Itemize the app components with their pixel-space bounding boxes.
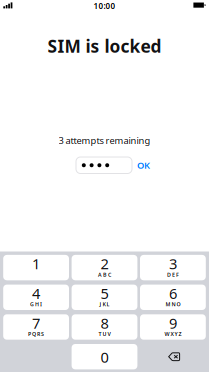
staticText: D E F xyxy=(167,271,179,278)
staticText: 3 xyxy=(169,254,177,273)
button[interactable]: 8 xyxy=(72,314,137,340)
button[interactable]: 3 xyxy=(140,255,206,280)
button[interactable]: 6 xyxy=(140,285,206,310)
staticText: M N O xyxy=(165,301,180,308)
staticText: 6 xyxy=(169,284,177,303)
staticText: A B C xyxy=(98,271,111,278)
staticText: T U V xyxy=(98,330,110,338)
staticText: 1 xyxy=(32,254,40,273)
button[interactable]: 9 xyxy=(140,314,206,340)
button[interactable]: OK xyxy=(133,157,153,173)
staticText: 7 xyxy=(32,313,40,333)
button[interactable]: 1 xyxy=(3,255,69,280)
button[interactable]: 7 xyxy=(3,314,69,340)
staticText: G H I xyxy=(30,301,42,308)
button[interactable]: Delete xyxy=(140,344,206,369)
staticText: 0 xyxy=(100,347,108,367)
staticText: 3 attempts remaining xyxy=(58,134,150,147)
staticText: SIM is locked xyxy=(47,34,161,57)
staticText: 8 xyxy=(100,313,108,333)
staticText: 4 xyxy=(32,284,40,303)
button[interactable]: 4 xyxy=(3,285,69,310)
button[interactable]: 2 xyxy=(72,255,137,280)
staticText: 9 xyxy=(169,313,177,333)
staticText: 2 xyxy=(100,254,108,273)
staticText: OK xyxy=(137,159,150,171)
staticText: 10:00 xyxy=(93,0,115,11)
button[interactable]: 5 xyxy=(72,285,137,310)
staticText: J K L xyxy=(99,301,109,308)
staticText: W X Y Z xyxy=(164,330,181,338)
staticText: 5 xyxy=(100,284,108,303)
staticText: P Q R S xyxy=(28,330,44,338)
button[interactable]: 0 xyxy=(72,344,137,369)
